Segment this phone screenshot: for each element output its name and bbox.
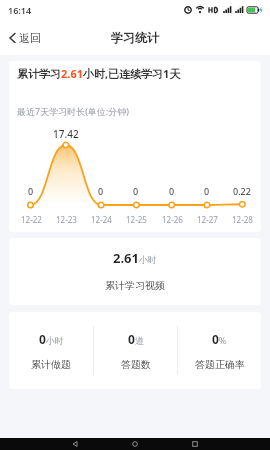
staticText: 0 — [204, 185, 210, 197]
staticText: 0道 — [128, 331, 144, 347]
staticText: 17.42 — [53, 127, 79, 141]
button[interactable] — [123, 438, 147, 450]
button[interactable] — [183, 438, 207, 450]
staticText: 12-27 — [197, 214, 218, 225]
staticText: 0.22 — [233, 185, 251, 197]
button[interactable] — [63, 438, 87, 450]
staticText: 12-23 — [56, 214, 77, 225]
staticText: 0 — [169, 185, 175, 197]
staticText: 累计学习2.61小时,已连续学习1天 — [17, 66, 181, 81]
staticText: 答题数 — [121, 358, 151, 371]
button[interactable]: 0小时 — [9, 312, 93, 389]
staticText: 答题正确率 — [195, 358, 245, 371]
button[interactable]: 2.61小时 — [9, 238, 261, 305]
staticText: 累计学习视频 — [105, 279, 165, 292]
staticText: 0% — [212, 331, 227, 347]
staticText: 16:14 — [8, 4, 32, 16]
button[interactable]: 0道 — [94, 312, 177, 389]
staticText: 12-22 — [21, 214, 42, 225]
staticText: 0 — [28, 185, 34, 197]
staticText: 12-28 — [232, 214, 253, 225]
staticText: 0小时 — [39, 331, 64, 347]
staticText: 12-24 — [91, 214, 112, 225]
staticText: 12-26 — [162, 214, 183, 225]
staticText: 学习统计 — [111, 30, 159, 45]
staticText: 2.61小时 — [113, 249, 157, 267]
staticText: 最近7天学习时长(单位:分钟) — [17, 105, 129, 117]
button[interactable]: 0% — [178, 312, 261, 389]
staticText: 累计做题 — [31, 358, 71, 371]
staticText: 返回 — [19, 31, 41, 45]
staticText: 0 — [133, 185, 139, 197]
button[interactable]: 返回 — [8, 31, 41, 45]
staticText: 12-25 — [126, 214, 147, 225]
staticText: 0 — [98, 185, 104, 197]
